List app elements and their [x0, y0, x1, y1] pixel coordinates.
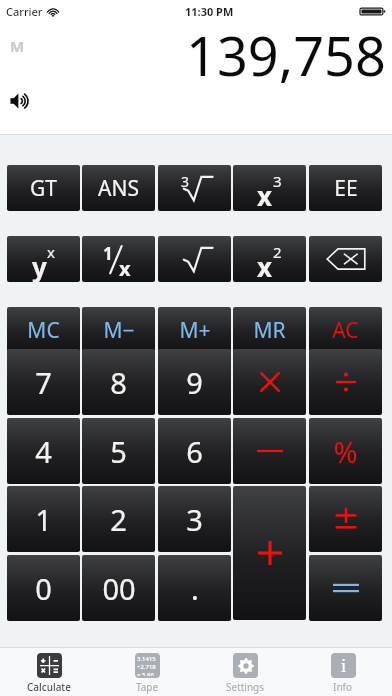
- staticText: 1: [103, 242, 113, 265]
- staticText: ANS: [98, 174, 139, 203]
- staticText: 3: [181, 172, 190, 191]
- button[interactable]: 9: [158, 349, 231, 415]
- staticText: 1: [35, 500, 52, 539]
- staticText: EE: [334, 174, 358, 203]
- button[interactable]: 3.1415: [98, 650, 196, 696]
- button[interactable]: M+: [158, 307, 231, 353]
- staticText: x: [257, 249, 273, 284]
- button[interactable]: Settings: [196, 650, 294, 696]
- staticText: 2: [110, 500, 127, 539]
- staticText: x: [119, 255, 131, 282]
- button[interactable]: ANS: [82, 165, 155, 211]
- staticText: y: [32, 249, 47, 284]
- staticText: = 5.86: [137, 671, 154, 676]
- staticText: +2.718: [137, 663, 156, 671]
- button[interactable]: AC: [309, 307, 382, 353]
- button[interactable]: 1: [7, 486, 80, 552]
- staticText: 3: [186, 500, 203, 539]
- button[interactable]: M−: [82, 307, 155, 353]
- staticText: Calculate: [27, 680, 71, 694]
- button[interactable]: 8: [82, 349, 155, 415]
- staticText: x: [257, 178, 273, 213]
- staticText: 5: [110, 432, 127, 471]
- button[interactable]: Divide: [309, 349, 382, 415]
- button[interactable]: Multiply: [233, 349, 306, 415]
- button[interactable]: 00: [82, 555, 155, 621]
- staticText: 2: [273, 242, 282, 262]
- button[interactable]: x cubed: [233, 165, 306, 211]
- staticText: x: [47, 242, 55, 262]
- staticText: 8: [110, 363, 127, 402]
- staticText: Carrier: [6, 4, 43, 19]
- button[interactable]: 0: [7, 555, 80, 621]
- staticText: .: [191, 569, 199, 608]
- button[interactable]: .: [158, 555, 231, 621]
- button[interactable]: 4: [7, 418, 80, 484]
- button[interactable]: %: [309, 418, 382, 484]
- button[interactable]: one over x: [82, 236, 155, 282]
- button[interactable]: 5: [82, 418, 155, 484]
- staticText: MC: [27, 316, 60, 345]
- button[interactable]: Plus: [233, 486, 306, 620]
- staticText: 11:30 PM: [185, 4, 234, 19]
- button[interactable]: 3: [158, 486, 231, 552]
- staticText: 3.1415: [137, 655, 156, 663]
- staticText: 6: [186, 432, 203, 471]
- button[interactable]: Calculate: [0, 650, 98, 696]
- staticText: GT: [30, 174, 57, 203]
- staticText: MR: [253, 316, 286, 345]
- staticText: AC: [332, 316, 359, 345]
- button[interactable]: Backspace: [309, 236, 382, 282]
- staticText: 139,758: [186, 18, 386, 92]
- staticText: 0: [35, 569, 52, 608]
- button[interactable]: Cube root: [158, 165, 231, 211]
- staticText: Info: [333, 680, 353, 694]
- button[interactable]: x squared: [233, 236, 306, 282]
- staticText: Tape: [136, 680, 159, 694]
- staticText: Settings: [226, 680, 265, 694]
- button[interactable]: MR: [233, 307, 306, 353]
- button[interactable]: i: [294, 650, 392, 696]
- staticText: %: [333, 432, 358, 471]
- staticText: M−: [103, 316, 135, 345]
- staticText: 9: [186, 363, 203, 402]
- staticText: 4: [35, 432, 52, 471]
- staticText: 00: [102, 569, 136, 608]
- button[interactable]: 6: [158, 418, 231, 484]
- button[interactable]: y to the power x: [7, 236, 80, 282]
- button[interactable]: Plus minus: [309, 486, 382, 552]
- button[interactable]: MC: [7, 307, 80, 353]
- staticText: i: [341, 655, 347, 677]
- button[interactable]: Minus: [233, 418, 306, 484]
- button[interactable]: Equals: [309, 555, 382, 621]
- button[interactable]: 7: [7, 349, 80, 415]
- staticText: 3: [273, 171, 282, 191]
- button[interactable]: 2: [82, 486, 155, 552]
- staticText: M: [10, 36, 25, 56]
- staticText: 7: [35, 363, 52, 402]
- button[interactable]: Square root: [158, 236, 231, 282]
- staticText: M+: [179, 316, 211, 345]
- button[interactable]: EE: [309, 165, 382, 211]
- button[interactable]: Sound: [7, 88, 35, 114]
- button[interactable]: GT: [7, 165, 80, 211]
